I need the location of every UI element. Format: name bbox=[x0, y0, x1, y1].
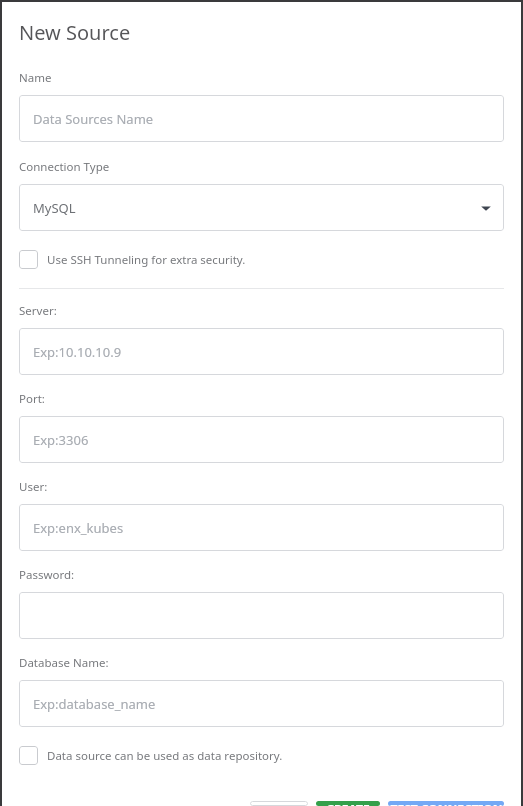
button[interactable]: CREATE bbox=[316, 801, 380, 806]
staticText: Exp:3306 bbox=[33, 431, 89, 449]
button[interactable]: Database Name bbox=[19, 680, 504, 727]
staticText: Data source can be used as data reposito… bbox=[47, 748, 283, 764]
staticText: TEST CONNECTION bbox=[390, 801, 503, 806]
button[interactable]: CLOSE bbox=[250, 801, 308, 806]
staticText: Exp:database_name bbox=[33, 695, 156, 713]
staticText: MySQL bbox=[33, 199, 76, 217]
button[interactable]: Data source can be used as data reposito… bbox=[19, 746, 504, 765]
staticText: Port: bbox=[19, 391, 45, 407]
button[interactable]: Use SSH Tunneling for extra security. bbox=[19, 250, 504, 269]
staticText: Name bbox=[19, 70, 52, 86]
button[interactable]: Connection Type bbox=[19, 184, 504, 231]
button[interactable]: TEST CONNECTION bbox=[388, 801, 504, 806]
button[interactable]: Password bbox=[19, 592, 504, 639]
staticText: Data Sources Name bbox=[33, 110, 154, 128]
staticText: Use SSH Tunneling for extra security. bbox=[47, 252, 246, 268]
staticText: Server: bbox=[19, 303, 57, 319]
staticText: Database Name: bbox=[19, 655, 109, 671]
staticText: Exp:10.10.10.9 bbox=[33, 343, 122, 361]
staticText: Password: bbox=[19, 567, 75, 583]
staticText: CLOSE bbox=[261, 801, 298, 806]
button[interactable]: User bbox=[19, 504, 504, 551]
staticText: Exp:enx_kubes bbox=[33, 519, 124, 537]
button[interactable]: Server bbox=[19, 328, 504, 375]
staticText: User: bbox=[19, 479, 48, 495]
staticText: CREATE bbox=[326, 801, 370, 806]
button[interactable]: Port bbox=[19, 416, 504, 463]
button[interactable]: Name bbox=[19, 95, 504, 142]
staticText: New Source bbox=[19, 19, 131, 46]
staticText: Connection Type bbox=[19, 159, 110, 175]
